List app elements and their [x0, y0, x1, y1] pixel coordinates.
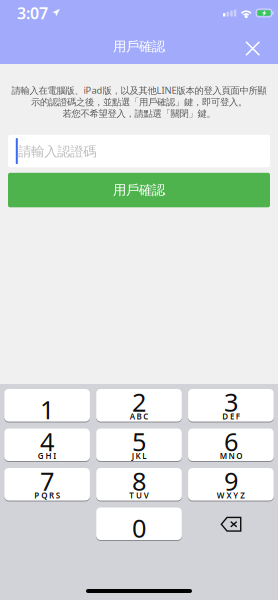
staticText: 請輸入在電腦版、iPad版，以及其他LINE版本的登入頁面中所顯 — [11, 84, 266, 96]
staticText: 7 — [40, 464, 54, 498]
staticText: 6 — [224, 425, 238, 458]
button[interactable]: Close — [231, 26, 278, 64]
button[interactable]: 6 — [188, 428, 274, 462]
staticText: 3 — [224, 385, 238, 419]
staticText: 8 — [132, 464, 146, 498]
staticText: ABC — [130, 411, 148, 422]
staticText: 9 — [224, 464, 238, 498]
staticText: MNO — [220, 451, 242, 461]
staticText: 示的認證碼之後，並點選「用戶確認」鍵，即可登入。 — [31, 96, 247, 108]
staticText: 4 — [40, 425, 54, 458]
staticText: 1 — [40, 393, 54, 426]
button[interactable]: 3 — [188, 389, 274, 422]
button[interactable]: 7 — [4, 468, 90, 501]
staticText: 5 — [132, 425, 146, 458]
staticText: 若您不希望登入，請點選「關閉」鍵。 — [62, 108, 215, 119]
staticText: TUV — [129, 490, 149, 501]
staticText: 請輸入認證碼 — [18, 143, 96, 160]
button[interactable]: 5 — [96, 428, 182, 462]
staticText: PQRS — [34, 490, 60, 501]
staticText: 用戶確認 — [113, 38, 165, 55]
staticText: 用戶確認 — [113, 182, 165, 198]
staticText: WXYZ — [217, 490, 245, 501]
button[interactable]: 0 — [96, 507, 182, 541]
button[interactable]: 4 — [4, 428, 90, 462]
button[interactable]: 1 — [4, 389, 90, 422]
staticText: 0 — [132, 511, 146, 545]
staticText: DEF — [222, 411, 240, 422]
button[interactable]: 用戶確認 — [8, 173, 270, 207]
button[interactable]: Delete — [188, 507, 274, 541]
staticText: 3:07 — [17, 2, 48, 24]
staticText: JKL — [132, 451, 146, 461]
button[interactable]: 9 — [188, 468, 274, 501]
staticText: GHI — [38, 451, 56, 461]
staticText: 2 — [132, 385, 146, 419]
button[interactable]: 8 — [96, 468, 182, 501]
button[interactable]: 2 — [96, 389, 182, 422]
